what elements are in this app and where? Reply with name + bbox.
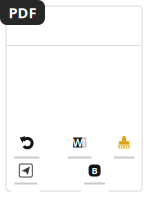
button[interactable]: Word document [65,132,95,167]
button[interactable]: Undo [11,132,42,167]
staticText: B [92,164,98,177]
staticText: W [73,135,83,150]
button[interactable]: Open in app [81,160,108,193]
button[interactable]: Send [11,160,40,193]
button[interactable]: PDF document [0,0,45,25]
staticText: PDF [8,3,36,22]
button[interactable]: Markup [111,132,138,167]
